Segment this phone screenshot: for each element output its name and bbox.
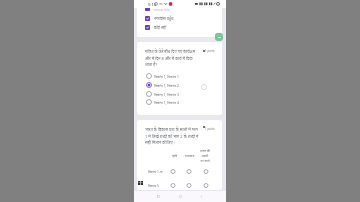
staticText: 1 point (205, 49, 215, 53)
button[interactable]: विकल्प 1, विकल्प 4 (146, 99, 179, 105)
button[interactable]: Home (175, 191, 186, 202)
staticText: नगरवास केन्द्र (153, 7, 170, 12)
staticText: भारत की उद्यमी पर कार्य (199, 149, 211, 163)
staticText: विकल्प 1-क (148, 170, 163, 174)
button[interactable]: Submit (215, 33, 223, 41)
button[interactable]: विकल्प 1, विकल्प 3 (146, 91, 179, 97)
button[interactable]: विकल्प 1-क (137, 169, 222, 174)
staticText: 5:14 (148, 2, 156, 7)
staticText: विकल्प 1, विकल्प 1 (154, 74, 179, 79)
staticText: विकल्प 1, विकल्प 3 (154, 92, 179, 97)
button[interactable]: विकल्प 5 (137, 183, 222, 188)
button[interactable]: Keyboard (138, 181, 143, 185)
staticText: कृषि (168, 154, 181, 158)
button[interactable]: विकल्प 1, विकल्प 1 (146, 73, 179, 79)
button[interactable]: विकल्प 1, विकल्प 2 (146, 82, 179, 88)
staticText: भारत के विकास पता के सालों में भाग 1 में… (145, 127, 199, 145)
staticText: कोई नहीं (154, 25, 167, 30)
staticText: विकल्प 1, विकल्प 4 (154, 100, 179, 105)
staticText: गणित के फेरे बीच दिए गए कार्यक्रम और में… (145, 49, 197, 67)
staticText: नगरवास पहुँच (154, 16, 174, 21)
staticText: 1 point (205, 127, 215, 131)
staticText: व्यवसाय (182, 154, 197, 158)
button[interactable]: Recents (153, 191, 164, 202)
staticText: विकल्प 1, विकल्प 2 (154, 83, 179, 88)
staticText: विकल्प 5 (148, 184, 159, 188)
button[interactable]: नगरवास पहुँच (145, 16, 174, 21)
button[interactable]: Back (196, 191, 207, 202)
button[interactable]: कोई नहीं (145, 25, 167, 30)
